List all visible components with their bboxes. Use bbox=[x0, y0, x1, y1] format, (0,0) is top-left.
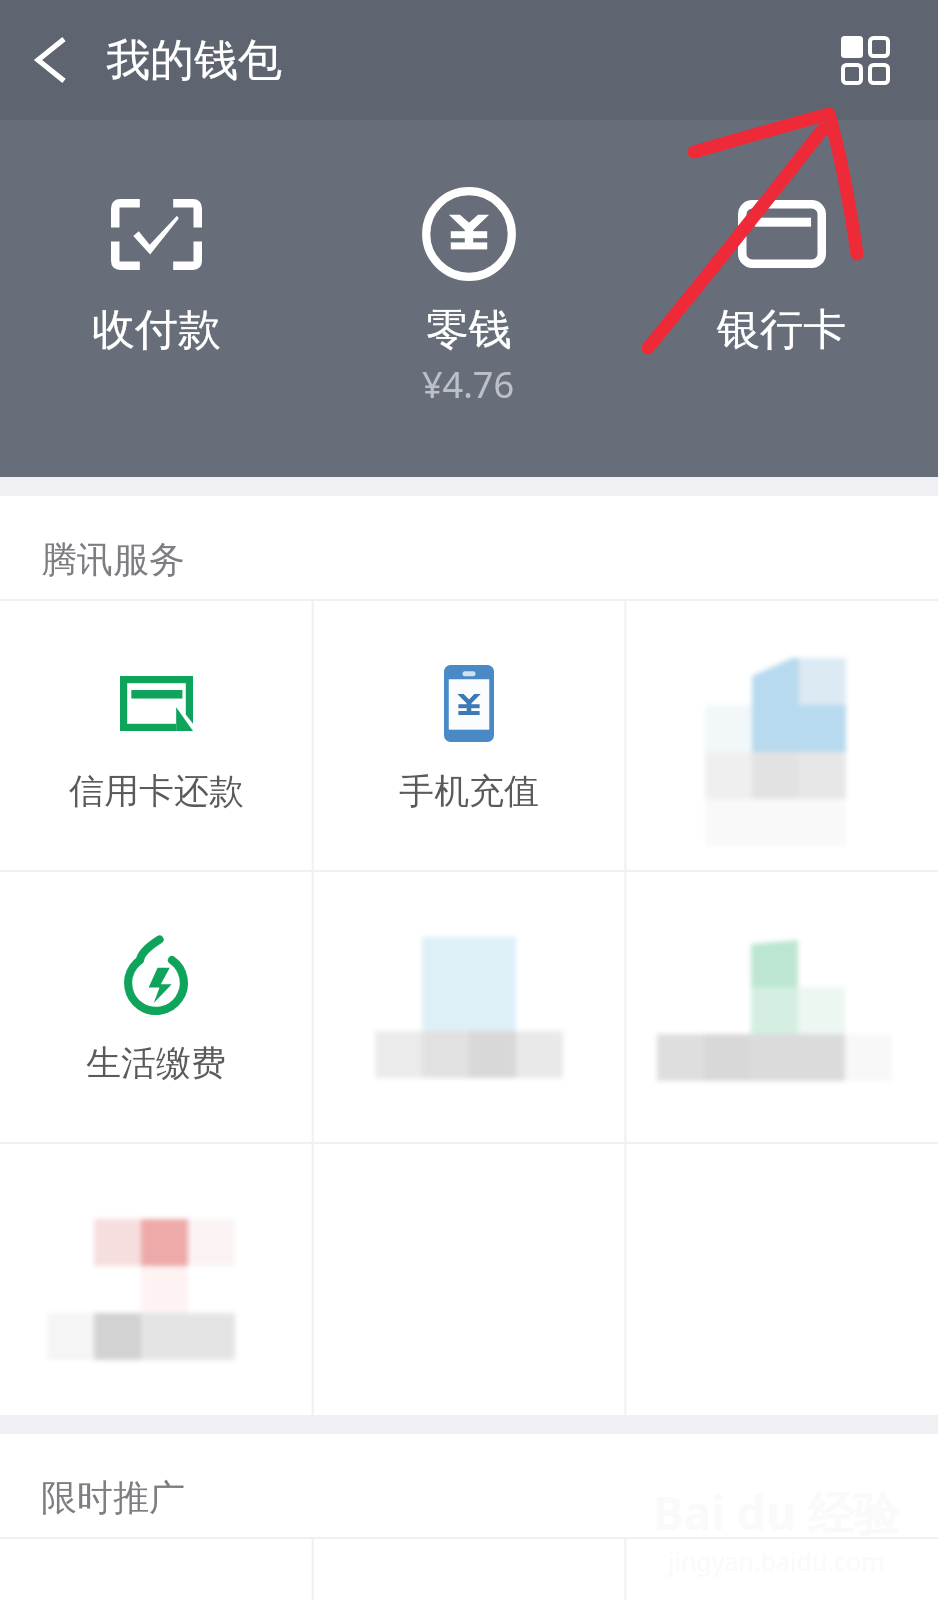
button[interactable]: 生活缴费 bbox=[0, 871, 312, 1144]
staticText: 手机充值 bbox=[399, 769, 539, 813]
staticText: ¥4.76 bbox=[422, 360, 515, 409]
button[interactable] bbox=[0, 1144, 312, 1415]
staticText: 信用卡还款 bbox=[69, 769, 244, 813]
button[interactable]: 收付款 bbox=[0, 120, 312, 357]
button[interactable]: Back bbox=[12, 22, 88, 98]
button[interactable]: 零钱 bbox=[312, 120, 625, 409]
button[interactable]: 信用卡还款 bbox=[0, 599, 312, 871]
staticText: 腾讯服务 bbox=[41, 537, 185, 582]
button[interactable] bbox=[312, 871, 625, 1144]
button[interactable]: 银行卡 bbox=[625, 120, 938, 357]
button[interactable]: 手机充值 bbox=[312, 599, 625, 871]
button[interactable] bbox=[625, 871, 938, 1144]
staticText: 零钱 bbox=[426, 303, 512, 357]
staticText: 我的钱包 bbox=[106, 33, 282, 88]
staticText: 收付款 bbox=[92, 303, 221, 357]
button[interactable]: More bbox=[825, 20, 905, 100]
button[interactable] bbox=[625, 599, 938, 871]
staticText: 限时推广 bbox=[41, 1475, 185, 1520]
staticText: 生活缴费 bbox=[86, 1041, 226, 1085]
staticText: Bai du 经验 bbox=[653, 1481, 900, 1544]
staticText: 银行卡 bbox=[717, 303, 846, 357]
